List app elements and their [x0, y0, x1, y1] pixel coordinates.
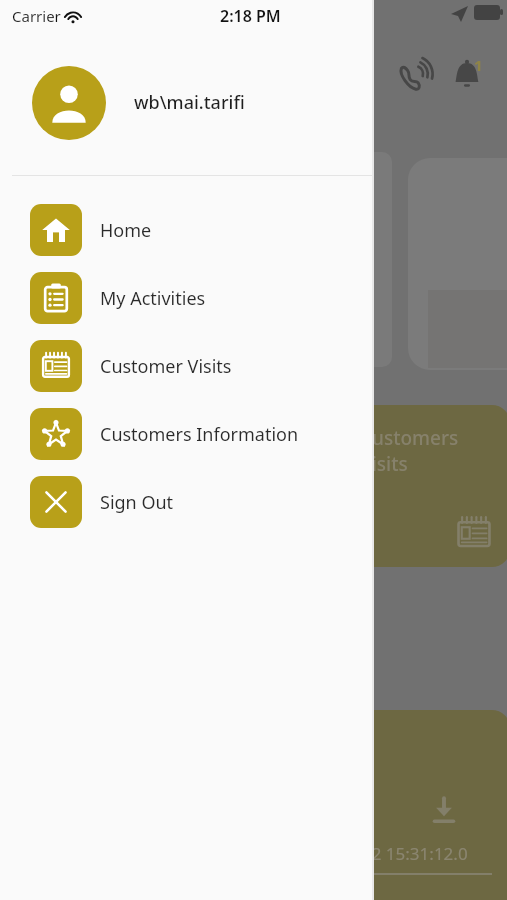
- staticText: Customers Information: [100, 422, 299, 447]
- staticText: Customer Visits: [100, 354, 232, 379]
- staticText: My Activities: [100, 286, 206, 311]
- staticText: wb\mai.tarifi: [134, 90, 245, 115]
- button[interactable]: wb\mai.tarifi: [0, 30, 372, 175]
- button[interactable]: My Activities: [0, 264, 372, 332]
- button[interactable]: Customer Visits: [0, 332, 372, 400]
- staticText: Carrier: [12, 6, 61, 26]
- staticText: Home: [100, 218, 152, 243]
- button[interactable]: Home: [0, 196, 372, 264]
- staticText: 22 15:31:12.0: [362, 842, 468, 865]
- staticText: 1: [474, 55, 483, 75]
- staticText: Customers Visits: [360, 425, 459, 477]
- button[interactable]: Sign Out: [0, 468, 372, 536]
- staticText: 2:18 PM: [220, 5, 281, 27]
- button[interactable]: Customers Information: [0, 400, 372, 468]
- staticText: Sign Out: [100, 490, 174, 515]
